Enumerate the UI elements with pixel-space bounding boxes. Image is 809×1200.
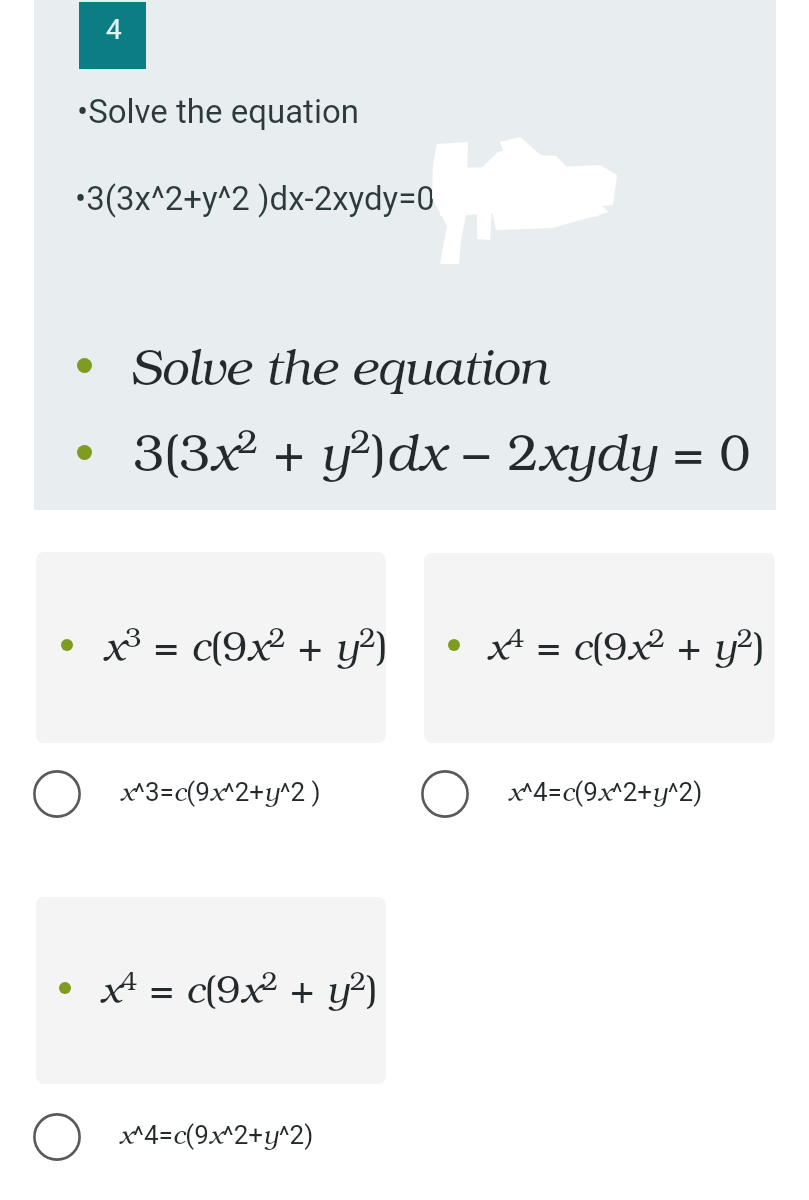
staticText: x^4=c(9x^2+y^2): [508, 773, 703, 808]
button[interactable]: x^4=c(9x^2+y^2): [417, 764, 704, 824]
staticText: x^4=c(9x^2+y^2): [119, 1116, 314, 1151]
staticText: 3(3x2 + y2)dx − 2xydy = 0: [133, 416, 751, 484]
staticText: •Solve the equation: [77, 92, 359, 131]
staticText: 4: [106, 13, 122, 46]
staticText: •3(3x^2+y^2 )dx-2xydy=0: [75, 179, 435, 218]
button[interactable]: x4 = c(9x2 + y2): [36, 897, 386, 1084]
staticText: x4 = c(9x2 + y2): [100, 961, 378, 1014]
button[interactable]: x4 = c(9x2 + y2): [424, 553, 775, 743]
button[interactable]: x^4=c(9x^2+y^2): [29, 1107, 315, 1167]
button[interactable]: x^3=c(9x^2+y^2 ): [29, 764, 320, 824]
button[interactable]: x3 = c(9x2 + y2): [36, 552, 386, 743]
staticText: x^3=c(9x^2+y^2 ): [120, 773, 321, 808]
staticText: Solve the equation: [130, 332, 548, 397]
staticText: x3 = c(9x2 + y2): [103, 617, 386, 671]
button[interactable]: 4: [79, 2, 146, 69]
staticText: x4 = c(9x2 + y2): [487, 618, 765, 671]
